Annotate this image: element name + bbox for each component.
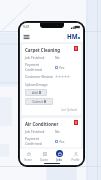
- staticText: Home: [24, 158, 32, 162]
- staticText: No: [55, 129, 60, 134]
- staticText: Profile: [71, 158, 80, 162]
- staticText: Yes: [59, 139, 65, 144]
- staticText: Payment Confirmed: [25, 136, 55, 146]
- button[interactable]: Rate star: [58, 75, 61, 78]
- button[interactable]: Payment confirmed checkbox: [55, 66, 58, 69]
- button[interactable]: Profile: [68, 148, 82, 162]
- staticText: No: [55, 55, 60, 60]
- button[interactable]: Rate star: [55, 75, 58, 78]
- staticText: Yes: [59, 65, 65, 70]
- staticText: Last Updated: [61, 108, 78, 112]
- staticText: Customer Review: [25, 74, 55, 79]
- staticText: 9:41: [23, 25, 30, 29]
- button[interactable]: Rate star: [67, 75, 70, 78]
- button[interactable]: Add: [25, 89, 47, 96]
- button[interactable]: Quote: [37, 148, 51, 162]
- button[interactable]: HM: [67, 32, 80, 40]
- button[interactable]: Carpet Cleaning: [22, 44, 81, 115]
- staticText: Job Finished: [25, 55, 55, 60]
- staticText: Add: [32, 91, 38, 95]
- staticText: Job Finished: [25, 129, 55, 134]
- button[interactable]: Home: [21, 148, 35, 162]
- staticText: Carpet Cleaning: [25, 47, 61, 53]
- staticText: Submit: [32, 100, 43, 104]
- staticText: Quote: [40, 158, 48, 162]
- button[interactable]: Rate star: [64, 75, 67, 78]
- button[interactable]: Payment confirmed checkbox: [55, 140, 58, 143]
- staticText: Upload Image: [25, 82, 48, 87]
- staticText: Payment Confirmed: [25, 62, 55, 72]
- button[interactable]: Air Conditioner: [22, 118, 81, 148]
- staticText: Jobs: [56, 158, 62, 162]
- button[interactable]: Rate star: [61, 75, 64, 78]
- staticText: HM: [67, 32, 78, 40]
- button[interactable]: Menu: [23, 33, 30, 40]
- button[interactable]: Submit: [25, 98, 53, 105]
- button[interactable]: Jobs: [52, 148, 66, 162]
- staticText: Air Conditioner: [25, 121, 59, 127]
